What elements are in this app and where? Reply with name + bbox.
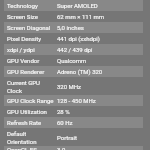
staticText: Portrait — [57, 134, 77, 141]
button[interactable]: Technology — [4, 0, 143, 11]
staticText: Super AMOLED — [57, 2, 98, 9]
button[interactable]: GPU Clock Range — [4, 95, 143, 106]
button[interactable]: Pixel Density — [4, 33, 143, 44]
staticText: 442 / 439 dpi — [57, 46, 93, 53]
staticText: 5,0 inches — [57, 24, 84, 31]
staticText: GPU Vendor — [7, 57, 55, 64]
staticText: GPU Clock Range — [7, 97, 55, 104]
staticText: GPU Renderer — [7, 68, 55, 75]
staticText: Screen Size — [7, 13, 55, 20]
button[interactable]: OpenGL ES — [4, 146, 143, 150]
staticText: 3.0 — [57, 146, 66, 150]
button[interactable]: GPU Vendor — [4, 55, 143, 66]
staticText: Refresh Rate — [7, 119, 55, 126]
staticText: Default Orientation — [7, 130, 55, 145]
staticText: Screen Diagonal — [7, 24, 55, 31]
button[interactable]: Screen Diagonal — [4, 22, 143, 33]
staticText: 128 - 450 MHz — [57, 97, 96, 104]
button[interactable]: GPU Renderer — [4, 66, 143, 77]
staticText: Current GPU Clock — [7, 79, 55, 94]
button[interactable]: Screen Size — [4, 11, 143, 22]
staticText: 62 mm × 111 mm — [57, 13, 105, 20]
staticText: 28 % — [57, 108, 70, 115]
staticText: Technology — [7, 2, 55, 9]
staticText: 60 Hz — [57, 119, 73, 126]
staticText: 320 MHz — [57, 83, 82, 90]
staticText: Qualcomm — [57, 57, 87, 64]
staticText: 441 dpi (xxhdpi) — [57, 35, 100, 42]
button[interactable]: Current GPU Clock — [4, 77, 143, 95]
button[interactable]: GPU Utilization — [4, 106, 143, 117]
staticText: Pixel Density — [7, 35, 55, 42]
button[interactable]: xdpi / ydpi — [4, 44, 143, 55]
staticText: xdpi / ydpi — [7, 46, 55, 53]
staticText: Adreno (TM) 320 — [57, 68, 103, 75]
button[interactable]: Default Orientation — [4, 128, 143, 146]
staticText: OpenGL ES — [7, 146, 55, 150]
button[interactable]: Refresh Rate — [4, 117, 143, 128]
staticText: GPU Utilization — [7, 108, 55, 115]
